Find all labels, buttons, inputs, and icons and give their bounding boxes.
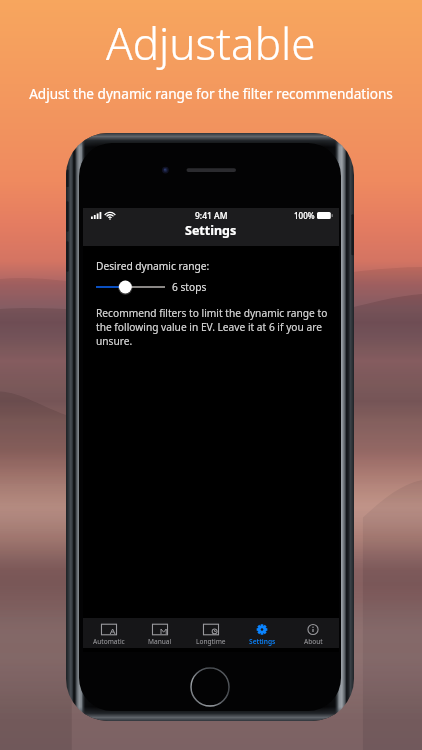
staticText: 100% (294, 210, 315, 221)
button[interactable]: Manual (135, 618, 185, 648)
staticText: Adjustable (106, 13, 316, 73)
button[interactable]: Longtime (186, 618, 236, 648)
staticText: Settings (249, 637, 276, 646)
staticText: Desired dynamic range: (96, 259, 210, 273)
staticText: Automatic (93, 637, 125, 646)
staticText: Longtime (196, 637, 226, 646)
button[interactable]: Automatic (84, 618, 134, 648)
button[interactable]: About (288, 618, 338, 648)
button[interactable] (96, 279, 165, 295)
staticText: Settings (185, 222, 237, 239)
staticText: Adjust the dynamic range for the filter … (29, 84, 393, 103)
staticText: Manual (148, 637, 172, 646)
staticText: 6 stops (172, 280, 207, 294)
staticText: About (304, 637, 323, 646)
staticText: 9:41 AM (195, 210, 228, 222)
staticText: Recommend filters to limit the dynamic r… (96, 306, 328, 348)
button[interactable]: Settings (237, 618, 287, 648)
